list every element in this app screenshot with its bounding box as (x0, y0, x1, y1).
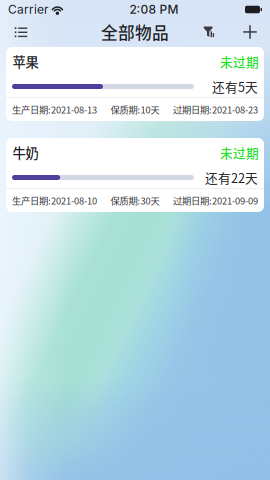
staticText: 牛奶 (12, 143, 38, 162)
button[interactable]: 牛奶 (6, 138, 264, 212)
staticText: 苹果 (12, 52, 38, 71)
staticText: 生产日期:2021-08-10 (12, 194, 97, 207)
staticText: 全部物品 (101, 20, 169, 44)
staticText: 保质期:30天 (110, 194, 159, 207)
staticText: 保质期:10天 (110, 103, 159, 116)
button[interactable]: Filter (195, 19, 223, 45)
staticText: 还有22天 (205, 168, 258, 187)
staticText: 2:08 PM (129, 2, 178, 17)
staticText: 生产日期:2021-08-13 (12, 103, 97, 116)
button[interactable]: Categories (5, 19, 37, 45)
staticText: 未过期 (220, 143, 259, 162)
staticText: Carrier (8, 2, 49, 17)
staticText: 还有5天 (212, 77, 258, 96)
staticText: 过期日期:2021-09-09 (173, 194, 258, 207)
button[interactable]: 苹果 (6, 47, 264, 121)
staticText: 未过期 (220, 52, 259, 71)
button[interactable]: Add item (235, 19, 265, 45)
staticText: 过期日期:2021-08-23 (173, 103, 258, 116)
